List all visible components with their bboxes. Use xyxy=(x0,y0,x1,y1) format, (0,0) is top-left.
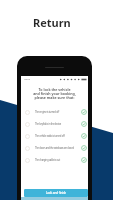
button[interactable]: Lock and finish xyxy=(24,189,88,197)
staticText: The keyfob is in the device xyxy=(35,122,80,126)
other: Status icons xyxy=(62,78,88,81)
button[interactable]: The engine is turned off xyxy=(25,106,87,118)
button[interactable]: The doors and the windows are closed xyxy=(25,142,87,154)
staticText: Lock and finish xyxy=(46,191,67,195)
button[interactable]: The vehicle radio is turned off xyxy=(25,130,87,142)
button[interactable]: The keyfob is in the device xyxy=(25,118,87,130)
button[interactable]: The charging cable is out xyxy=(25,154,87,166)
staticText: The engine is turned off xyxy=(35,110,80,114)
staticText: The charging cable is out xyxy=(35,158,80,162)
staticText: The doors and the windows are closed xyxy=(35,146,80,150)
staticText: Menu xyxy=(24,78,31,81)
staticText: To lock the vehicle and finish your book… xyxy=(25,87,84,101)
staticText: Return xyxy=(33,15,71,30)
staticText: The vehicle radio is turned off xyxy=(35,134,80,138)
